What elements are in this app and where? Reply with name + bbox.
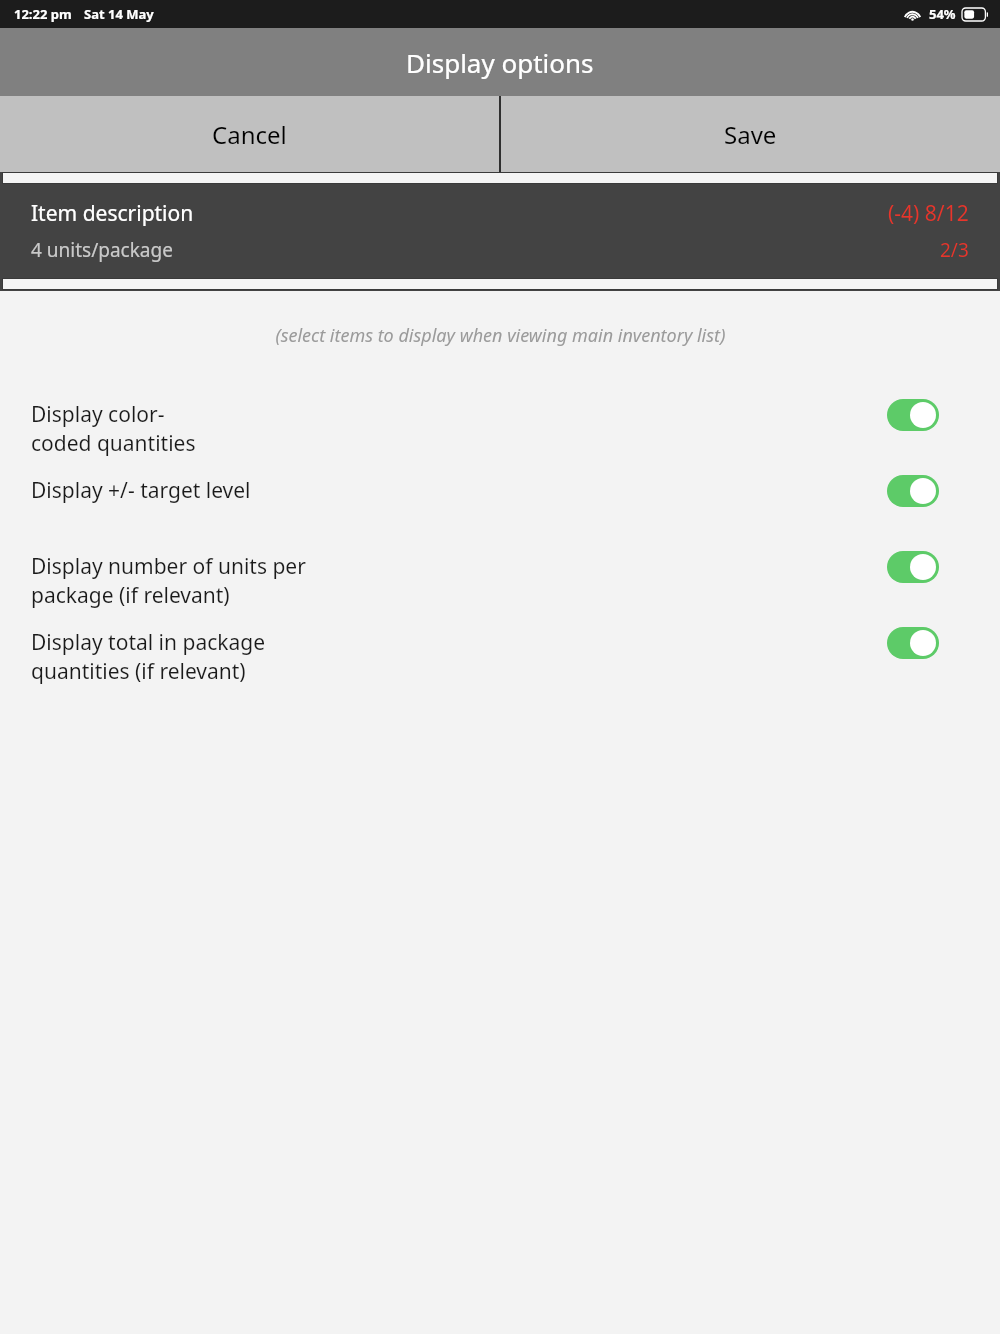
staticText: 2/3: [940, 237, 969, 263]
button[interactable]: Save: [501, 96, 1000, 172]
button[interactable]: Toggle option: [887, 627, 939, 659]
staticText: 4 units/package: [31, 237, 173, 263]
button[interactable]: Display color-: [0, 396, 1000, 472]
staticText: 12:22 pm: [14, 5, 72, 23]
staticText: Cancel: [212, 118, 287, 151]
button[interactable]: Toggle option: [887, 399, 939, 431]
button[interactable]: Display total in package: [0, 624, 1000, 700]
staticText: (-4) 8/12: [888, 199, 969, 228]
staticText: Display options: [406, 45, 594, 80]
staticText: 54%: [929, 5, 956, 23]
staticText: quantities (if relevant): [31, 657, 246, 686]
staticText: (select items to display when viewing ma…: [275, 323, 726, 348]
staticText: Item description: [31, 199, 194, 228]
button[interactable]: Toggle option: [887, 475, 939, 507]
button[interactable]: Item description: [0, 184, 1000, 277]
staticText: Display number of units per: [31, 552, 306, 581]
staticText: Sat 14 May: [84, 5, 154, 23]
button[interactable]: Cancel: [0, 96, 499, 172]
staticText: Display color-: [31, 400, 165, 429]
button[interactable]: Display number of units per: [0, 548, 1000, 624]
staticText: Display +/- target level: [31, 476, 251, 505]
button[interactable]: Toggle option: [887, 551, 939, 583]
staticText: Save: [724, 118, 777, 151]
button[interactable]: Display +/- target level: [0, 472, 1000, 548]
staticText: package (if relevant): [31, 581, 230, 610]
staticText: Display total in package: [31, 628, 266, 657]
staticText: coded quantities: [31, 429, 196, 458]
